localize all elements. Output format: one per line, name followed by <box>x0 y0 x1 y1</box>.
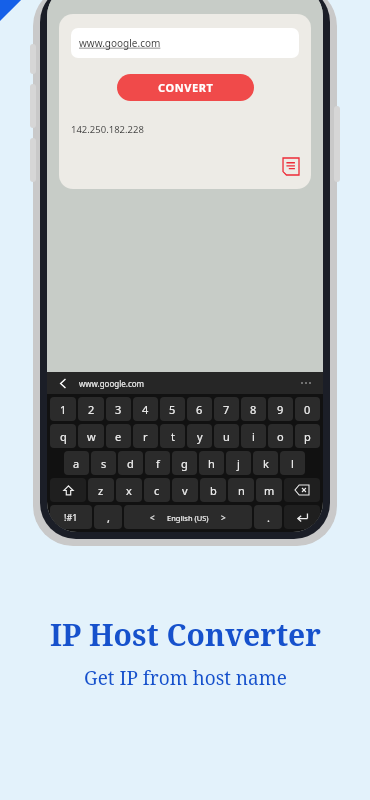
button[interactable]: w <box>78 424 104 448</box>
button[interactable]: u <box>214 424 239 448</box>
staticText: g <box>181 456 188 471</box>
staticText: y <box>197 429 203 444</box>
button[interactable]: v <box>172 478 198 502</box>
button[interactable]: < <box>124 505 252 529</box>
staticText: v <box>182 483 188 498</box>
staticText: 6 <box>196 402 203 417</box>
staticText: 7 <box>223 402 230 417</box>
staticText: i <box>252 429 255 444</box>
button[interactable]: p <box>295 424 320 448</box>
staticText: !#1 <box>64 511 78 523</box>
button[interactable]: Back <box>55 375 71 391</box>
button[interactable]: 1 <box>50 397 76 421</box>
staticText: IP Host Converter <box>50 614 321 655</box>
button[interactable]: h <box>199 451 224 475</box>
button[interactable]: Copy result <box>282 158 299 175</box>
staticText: 0 <box>304 402 311 417</box>
button[interactable]: z <box>88 478 114 502</box>
button[interactable]: n <box>228 478 254 502</box>
button[interactable]: 7 <box>214 397 239 421</box>
staticText: < <box>150 512 155 523</box>
button[interactable]: q <box>50 424 76 448</box>
staticText: a <box>73 456 80 471</box>
button[interactable]: 0 <box>295 397 320 421</box>
button[interactable]: e <box>106 424 131 448</box>
staticText: d <box>127 456 134 471</box>
staticText: w <box>87 429 96 444</box>
button[interactable]: a <box>64 451 89 475</box>
button[interactable]: b <box>200 478 226 502</box>
staticText: s <box>101 456 107 471</box>
button[interactable]: 4 <box>133 397 158 421</box>
staticText: 142.250.182.228 <box>71 123 144 136</box>
button[interactable]: Backspace <box>284 478 320 502</box>
staticText: 2 <box>88 402 95 417</box>
button[interactable]: g <box>172 451 197 475</box>
button[interactable]: 2 <box>78 397 104 421</box>
staticText: , <box>107 510 110 525</box>
staticText: 4 <box>142 402 149 417</box>
button[interactable]: 5 <box>160 397 185 421</box>
staticText: o <box>277 429 284 444</box>
button[interactable]: x <box>116 478 142 502</box>
staticText: k <box>263 456 269 471</box>
staticText: z <box>98 483 104 498</box>
button[interactable]: Enter <box>284 505 320 529</box>
staticText: 8 <box>250 402 257 417</box>
button[interactable]: k <box>253 451 278 475</box>
button[interactable]: 8 <box>241 397 266 421</box>
staticText: . <box>267 510 270 525</box>
button[interactable]: , <box>94 505 122 529</box>
staticText: f <box>156 456 160 471</box>
staticText: n <box>238 483 245 498</box>
staticText: c <box>154 483 160 498</box>
button[interactable]: r <box>133 424 158 448</box>
button[interactable]: j <box>226 451 251 475</box>
button[interactable]: d <box>118 451 143 475</box>
staticText: j <box>237 456 240 471</box>
button[interactable]: 9 <box>268 397 293 421</box>
button[interactable]: c <box>144 478 170 502</box>
staticText: 1 <box>60 402 67 417</box>
button[interactable]: Shift <box>50 478 86 502</box>
staticText: www.google.com <box>79 36 161 50</box>
button[interactable]: i <box>241 424 266 448</box>
button[interactable]: o <box>268 424 293 448</box>
button[interactable]: 3 <box>106 397 131 421</box>
staticText: English (US) <box>167 513 209 523</box>
button[interactable]: f <box>145 451 170 475</box>
staticText: p <box>304 429 311 444</box>
staticText: www.google.com <box>79 378 145 389</box>
button[interactable]: www.google.com <box>71 28 299 58</box>
staticText: 9 <box>277 402 284 417</box>
button[interactable]: CONVERT <box>117 74 254 101</box>
staticText: 3 <box>115 402 122 417</box>
staticText: q <box>60 429 67 444</box>
button[interactable]: m <box>256 478 282 502</box>
button[interactable]: More options <box>297 378 315 388</box>
button[interactable]: l <box>280 451 305 475</box>
button[interactable]: . <box>254 505 282 529</box>
button[interactable]: t <box>160 424 185 448</box>
staticText: CONVERT <box>158 80 214 95</box>
staticText: h <box>208 456 215 471</box>
staticText: t <box>171 429 175 444</box>
staticText: u <box>223 429 230 444</box>
staticText: l <box>291 456 294 471</box>
staticText: > <box>221 512 226 523</box>
staticText: x <box>126 483 132 498</box>
staticText: 5 <box>169 402 176 417</box>
staticText: e <box>115 429 122 444</box>
staticText: Get IP from host name <box>84 665 287 691</box>
staticText: b <box>210 483 217 498</box>
staticText: r <box>143 429 148 444</box>
button[interactable]: s <box>91 451 116 475</box>
staticText: m <box>264 483 275 498</box>
button[interactable]: 6 <box>187 397 212 421</box>
button[interactable]: !#1 <box>50 505 92 529</box>
button[interactable]: y <box>187 424 212 448</box>
